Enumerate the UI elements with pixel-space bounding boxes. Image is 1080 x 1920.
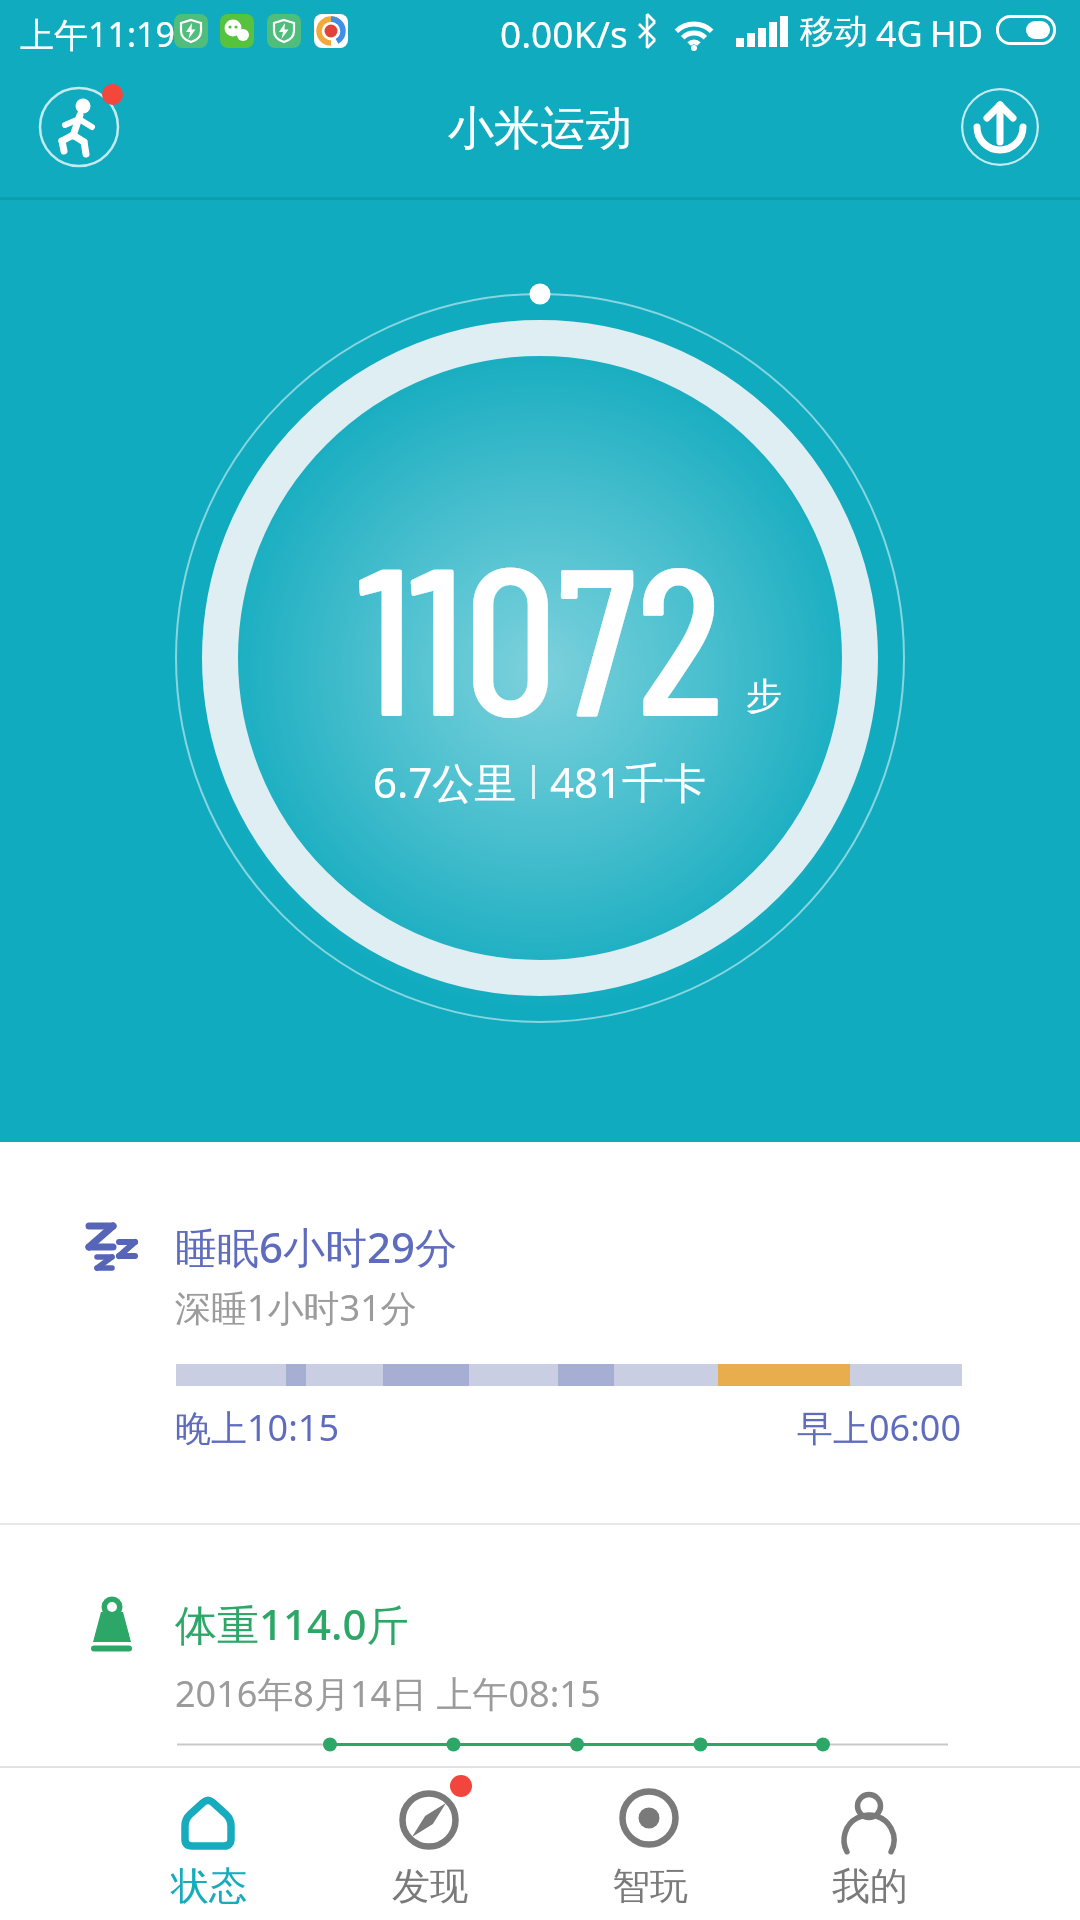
staticText: 上午11:19 (20, 11, 175, 57)
staticText: 晚上10:15 (175, 1403, 340, 1452)
staticText: 11072 (357, 508, 723, 758)
staticText: 睡眠6小时29分 (175, 1218, 458, 1275)
staticText: 我的 (832, 1862, 908, 1910)
button[interactable]: 状态 (74, 1768, 344, 1920)
staticText: 移动 (800, 10, 868, 53)
staticText: 智玩 (612, 1862, 688, 1910)
button[interactable] (961, 88, 1039, 166)
staticText: 发现 (392, 1862, 468, 1910)
staticText: HD (930, 9, 983, 58)
button[interactable]: 智玩 (515, 1768, 785, 1920)
staticText: 0.00K/s (500, 8, 628, 58)
staticText: 状态 (171, 1862, 247, 1910)
staticText: 小米运动 (448, 100, 632, 158)
button[interactable] (0, 200, 1080, 1142)
staticText: 481千卡 (550, 753, 707, 810)
staticText: 4G (876, 9, 923, 58)
staticText: 步 (746, 673, 782, 718)
button[interactable]: 发现 (295, 1768, 565, 1920)
staticText: 6.7公里 (373, 753, 517, 810)
staticText: 深睡1小时31分 (175, 1283, 417, 1332)
staticText: 2016年8月14日 上午08:15 (175, 1669, 601, 1718)
button[interactable]: 我的 (735, 1768, 1005, 1920)
button[interactable]: 体重114.0斤 (0, 1525, 1080, 1766)
button[interactable]: 睡眠6小时29分 (0, 1142, 1080, 1523)
staticText: 早上06:00 (797, 1403, 962, 1452)
staticText: 体重114.0斤 (175, 1595, 409, 1652)
button[interactable] (34, 82, 124, 172)
